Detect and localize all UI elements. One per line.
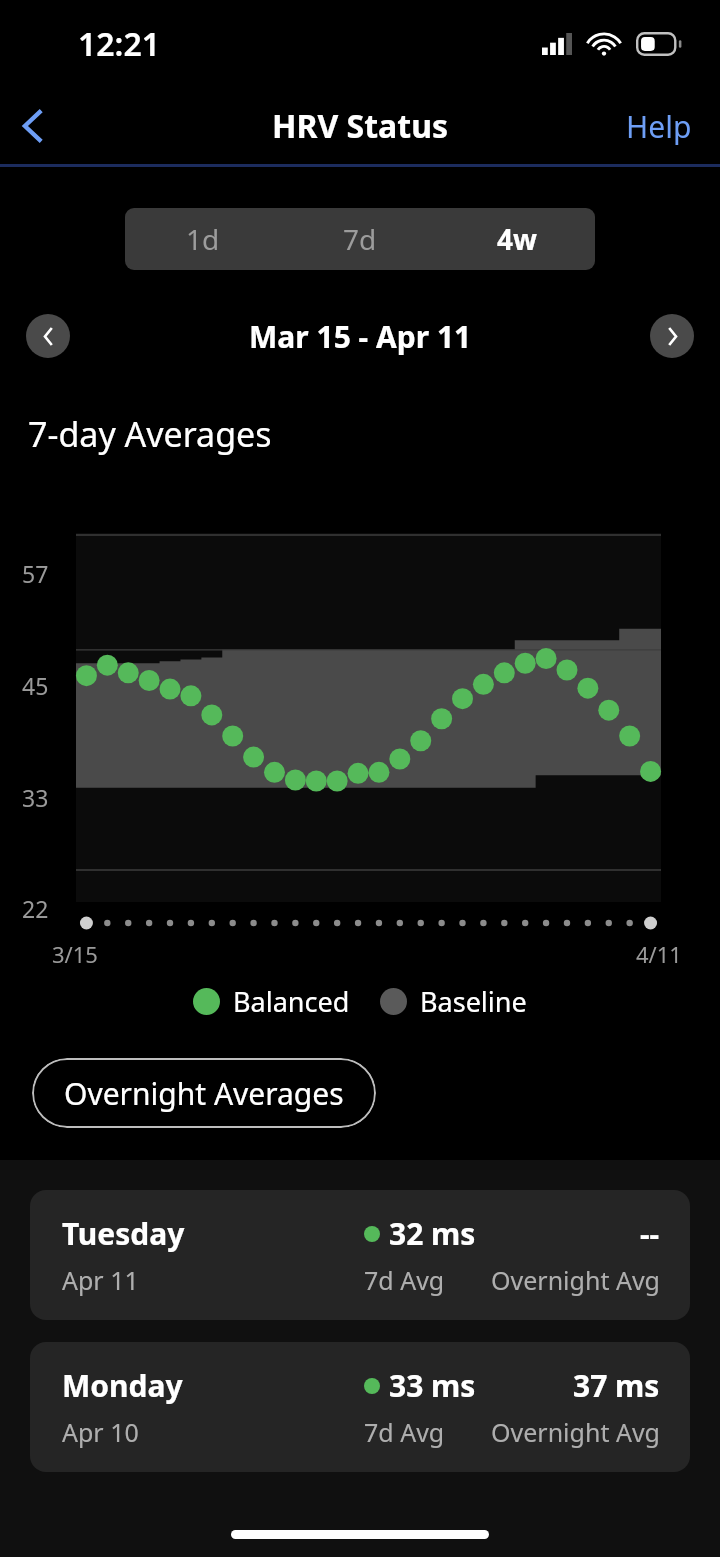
staticText: Tuesday: [62, 1213, 185, 1254]
staticText: 7-day Averages: [28, 411, 272, 457]
staticText: Balanced: [233, 983, 350, 1020]
staticText: Overnight Averages: [64, 1073, 344, 1114]
staticText: Help: [626, 106, 692, 147]
staticText: Overnight Avg: [491, 1415, 660, 1449]
staticText: 33 ms: [389, 1365, 476, 1406]
staticText: Overnight Avg: [491, 1263, 660, 1297]
staticText: Baseline: [420, 983, 527, 1020]
staticText: 7d Avg: [364, 1263, 445, 1297]
button[interactable]: Overnight Averages: [32, 1058, 376, 1128]
staticText: 12:21: [78, 22, 161, 66]
button[interactable]: Tuesday: [30, 1190, 690, 1320]
staticText: --: [640, 1213, 660, 1254]
staticText: Apr 11: [62, 1263, 139, 1297]
staticText: 37 ms: [573, 1365, 660, 1406]
button[interactable]: Monday: [30, 1342, 690, 1472]
staticText: 32 ms: [389, 1213, 476, 1254]
staticText: 4/11: [636, 939, 682, 969]
staticText: Mar 15 - Apr 11: [249, 316, 472, 357]
button[interactable]: Next period: [650, 314, 694, 358]
button[interactable]: 4w: [438, 208, 595, 270]
staticText: Monday: [62, 1365, 183, 1406]
staticText: HRV Status: [272, 104, 449, 148]
staticText: 33: [22, 782, 49, 813]
staticText: 7d Avg: [364, 1415, 445, 1449]
button[interactable]: Help: [616, 96, 702, 157]
staticText: 45: [22, 670, 49, 701]
button[interactable]: 1d: [125, 208, 281, 270]
staticText: 4w: [497, 220, 537, 258]
button[interactable]: Back: [0, 92, 68, 160]
staticText: Apr 10: [62, 1415, 139, 1449]
button[interactable]: 7d: [281, 208, 438, 270]
staticText: 3/15: [52, 939, 98, 969]
staticText: 22: [22, 893, 49, 924]
staticText: 57: [22, 558, 49, 589]
button[interactable]: Previous period: [26, 314, 70, 358]
staticText: 1d: [186, 220, 220, 258]
staticText: 7d: [343, 220, 377, 258]
